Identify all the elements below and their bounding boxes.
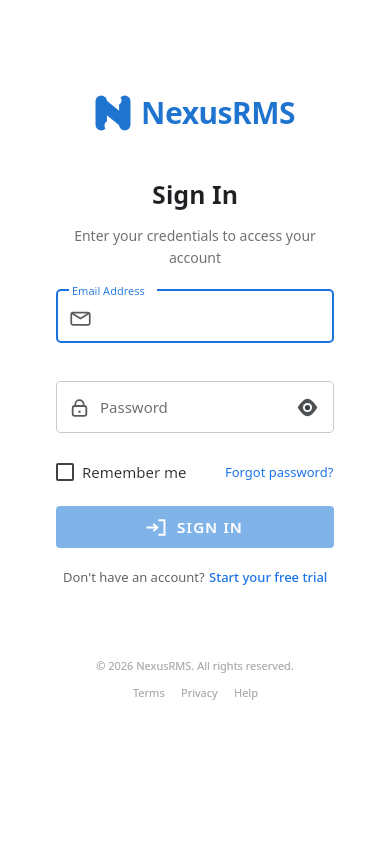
button[interactable]: Terms [125,685,173,700]
button[interactable]: Forgot password? [225,459,334,485]
button[interactable]: Remember me [56,458,187,486]
button[interactable]: Show password [294,394,320,420]
button[interactable]: Start your free trial [209,568,328,586]
button[interactable]: Privacy [173,685,226,700]
staticText: Help [234,685,258,700]
staticText: NexusRMS [141,92,296,133]
button[interactable]: SIGN IN [56,506,334,548]
staticText: Start your free trial [209,568,328,586]
button[interactable]: NexusRMS [90,92,300,133]
staticText: Privacy [181,685,218,700]
button[interactable]: Help [226,685,266,700]
button[interactable]: Password [56,381,334,433]
staticText: Remember me [82,462,187,482]
staticText: Terms [133,685,165,700]
staticText: Don't have an account? [63,568,209,586]
button[interactable]: Email Address [56,289,334,343]
staticText: © 2026 NexusRMS. All rights reserved. [0,658,390,673]
staticText: Enter your credentials to access your ac… [56,226,334,267]
staticText: SIGN IN [177,517,244,537]
staticText: Email Address [72,283,145,298]
staticText: Forgot password? [225,463,334,481]
staticText: Sign In [152,177,238,211]
staticText: Password [100,397,294,417]
